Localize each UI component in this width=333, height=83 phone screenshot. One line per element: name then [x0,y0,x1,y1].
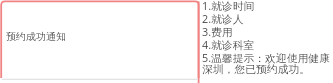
staticText: 4.就诊科室 [202,37,255,52]
staticText: 2.就诊人 [202,11,244,26]
staticText: 5.温馨提示：欢迎使用健康 [202,50,330,65]
staticText: 深圳，您已预约成功。 [202,63,310,77]
staticText: 3.费用 [202,24,233,39]
staticText: 预约成功通知 [6,30,66,43]
staticText: 1.就诊时间 [202,0,255,13]
